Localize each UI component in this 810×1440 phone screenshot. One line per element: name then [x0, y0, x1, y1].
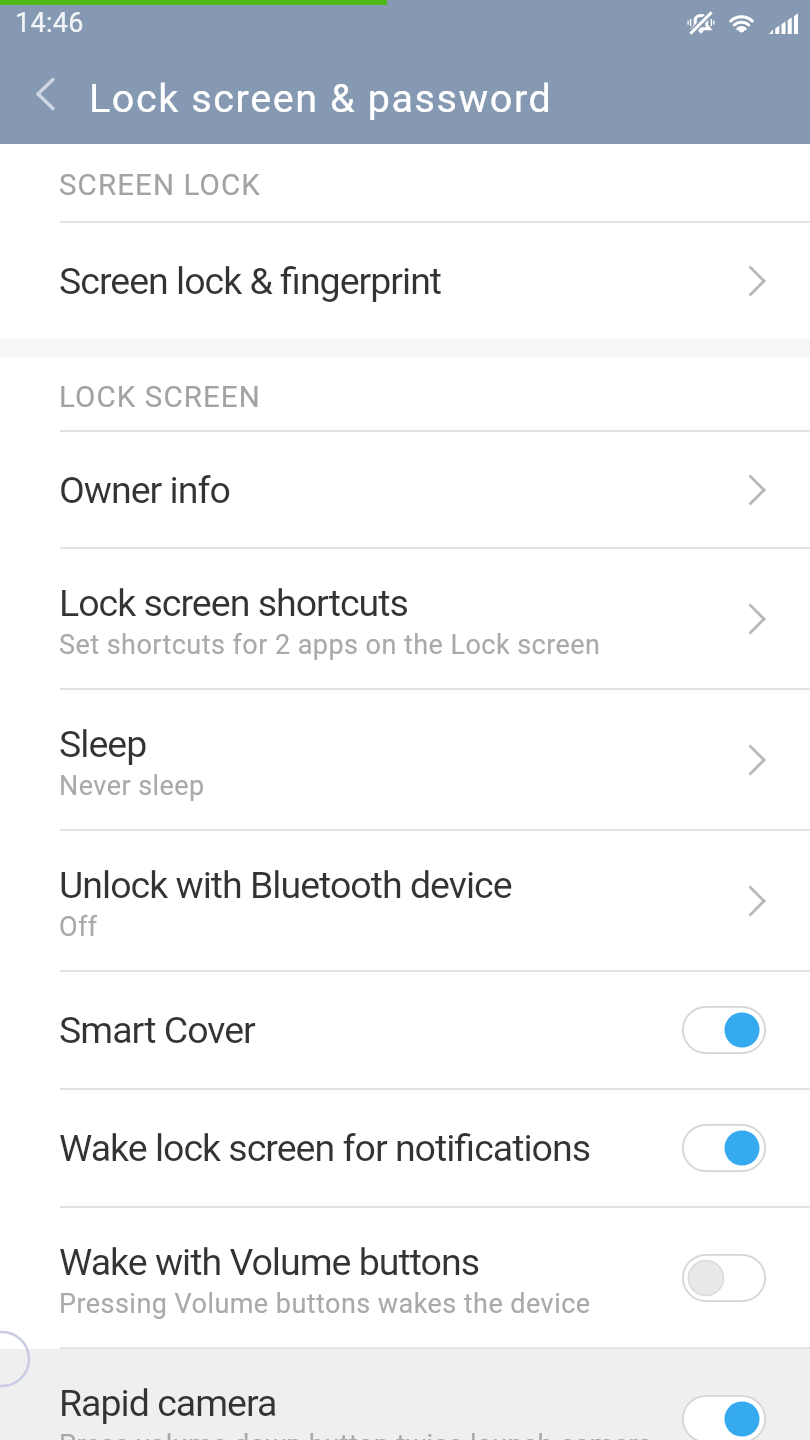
button[interactable]: Sleep — [0, 690, 810, 829]
staticText: Wake with Volume buttons — [59, 1240, 480, 1284]
staticText: Pressing Volume buttons wakes the device — [59, 1288, 591, 1320]
staticText: Lock screen shortcuts — [59, 581, 408, 625]
staticText: Off — [59, 911, 98, 943]
staticText: Sleep — [59, 722, 147, 766]
staticText: Lock screen & password — [89, 75, 553, 121]
staticText: SCREEN LOCK — [59, 168, 261, 203]
button[interactable]: Toggle on — [682, 1118, 766, 1178]
button[interactable]: Smart Cover — [0, 972, 810, 1088]
button[interactable]: Lock screen shortcuts — [0, 549, 810, 688]
button[interactable]: Back — [0, 59, 76, 129]
button[interactable]: Wake lock screen for notifications — [0, 1090, 810, 1206]
staticText: Press volume down button twice launch ca… — [59, 1429, 653, 1440]
staticText: Owner info — [59, 468, 230, 512]
staticText: Unlock with Bluetooth device — [59, 863, 512, 907]
staticText: Smart Cover — [59, 1008, 255, 1052]
staticText: Wake lock screen for notifications — [59, 1126, 591, 1170]
staticText: Rapid camera — [59, 1381, 277, 1425]
button[interactable]: Toggle on — [682, 1389, 766, 1440]
button[interactable]: Wake with Volume buttons — [0, 1208, 810, 1347]
staticText: LOCK SCREEN — [59, 380, 261, 415]
button[interactable]: Toggle off — [682, 1248, 766, 1308]
staticText: 14:46 — [15, 7, 84, 39]
staticText: Never sleep — [59, 770, 205, 802]
staticText: Screen lock & fingerprint — [59, 259, 442, 303]
button[interactable]: Owner info — [0, 432, 810, 547]
staticText: Set shortcuts for 2 apps on the Lock scr… — [59, 629, 601, 661]
button[interactable]: Rapid camera — [0, 1349, 810, 1440]
button[interactable]: Screen lock & fingerprint — [0, 223, 810, 339]
button[interactable]: Unlock with Bluetooth device — [0, 831, 810, 970]
button[interactable]: Toggle on — [682, 1000, 766, 1060]
